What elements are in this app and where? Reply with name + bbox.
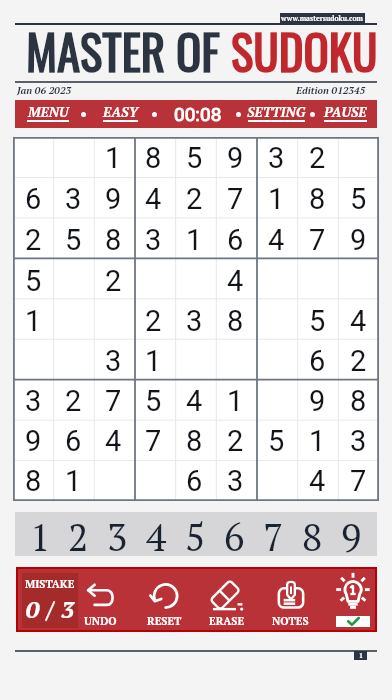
button[interactable]: 6 <box>174 461 215 501</box>
button[interactable]: 9 <box>93 178 133 219</box>
button[interactable]: NOTES <box>260 569 320 630</box>
button[interactable]: MENU <box>14 100 82 128</box>
button[interactable]: 1 <box>174 219 215 260</box>
button[interactable]: 3 <box>13 381 53 421</box>
button[interactable]: 3 <box>98 512 137 556</box>
button[interactable]: 6 <box>13 178 53 219</box>
button[interactable]: 5 <box>338 178 379 219</box>
button[interactable]: 9 <box>338 219 379 260</box>
button[interactable]: 2 <box>297 137 338 178</box>
button[interactable]: 7 <box>93 381 133 421</box>
button[interactable]: ERASE <box>197 569 257 630</box>
button[interactable] <box>93 461 133 501</box>
button[interactable]: 8 <box>215 301 256 341</box>
button[interactable]: 3 <box>133 219 174 260</box>
button[interactable]: 9 <box>332 512 371 556</box>
button[interactable]: 9 <box>13 421 53 461</box>
button[interactable]: 3 <box>53 178 93 219</box>
button[interactable]: 9 <box>297 381 338 421</box>
button[interactable] <box>256 381 297 421</box>
button[interactable]: 4 <box>133 178 174 219</box>
button[interactable]: 1 <box>215 381 256 421</box>
button[interactable] <box>256 260 297 301</box>
button[interactable] <box>174 260 215 301</box>
button[interactable]: 5 <box>256 421 297 461</box>
button[interactable]: 1 <box>133 341 174 381</box>
button[interactable] <box>13 341 53 381</box>
button[interactable] <box>53 301 93 341</box>
button[interactable]: 00:08 <box>164 100 232 128</box>
button[interactable] <box>297 260 338 301</box>
button[interactable]: 7 <box>338 461 379 501</box>
button[interactable]: 4 <box>137 512 176 556</box>
button[interactable] <box>93 301 133 341</box>
button[interactable]: RESET <box>134 569 194 630</box>
button[interactable]: Hint <box>323 569 383 630</box>
button[interactable] <box>215 341 256 381</box>
button[interactable]: 5 <box>174 137 215 178</box>
button[interactable] <box>338 260 379 301</box>
button[interactable] <box>256 341 297 381</box>
button[interactable]: 2 <box>59 512 98 556</box>
button[interactable]: 5 <box>133 381 174 421</box>
button[interactable]: 8 <box>297 178 338 219</box>
button[interactable]: 7 <box>215 178 256 219</box>
button[interactable]: 5 <box>297 301 338 341</box>
button[interactable]: SETTING <box>242 100 310 128</box>
button[interactable] <box>256 461 297 501</box>
button[interactable]: 8 <box>93 219 133 260</box>
button[interactable]: MISTAKE <box>22 573 78 628</box>
button[interactable]: 1 <box>13 301 53 341</box>
button[interactable] <box>338 137 379 178</box>
button[interactable]: 8 <box>293 512 332 556</box>
button[interactable] <box>256 301 297 341</box>
button[interactable]: 2 <box>93 260 133 301</box>
button[interactable]: 3 <box>338 421 379 461</box>
button[interactable]: 8 <box>13 461 53 501</box>
button[interactable]: 6 <box>53 421 93 461</box>
button[interactable]: PAUSE <box>311 100 379 128</box>
button[interactable]: 6 <box>215 512 254 556</box>
button[interactable]: 2 <box>215 421 256 461</box>
button[interactable]: 7 <box>297 219 338 260</box>
button[interactable]: 1 <box>297 421 338 461</box>
button[interactable] <box>53 341 93 381</box>
button[interactable] <box>133 461 174 501</box>
button[interactable]: 2 <box>133 301 174 341</box>
button[interactable]: 5 <box>53 219 93 260</box>
button[interactable]: 8 <box>133 137 174 178</box>
button[interactable] <box>133 260 174 301</box>
button[interactable]: 4 <box>256 219 297 260</box>
button[interactable]: 3 <box>174 301 215 341</box>
button[interactable]: 2 <box>174 178 215 219</box>
button[interactable]: 7 <box>254 512 293 556</box>
button[interactable] <box>174 341 215 381</box>
button[interactable]: 8 <box>174 421 215 461</box>
button[interactable]: 5 <box>13 260 53 301</box>
button[interactable]: UNDO <box>70 569 130 630</box>
button[interactable]: 9 <box>215 137 256 178</box>
button[interactable]: 2 <box>338 341 379 381</box>
button[interactable]: 5 <box>176 512 215 556</box>
button[interactable]: 4 <box>297 461 338 501</box>
button[interactable] <box>53 137 93 178</box>
button[interactable]: 4 <box>174 381 215 421</box>
button[interactable]: 1 <box>53 461 93 501</box>
button[interactable]: 6 <box>297 341 338 381</box>
button[interactable]: 4 <box>215 260 256 301</box>
button[interactable] <box>13 137 53 178</box>
button[interactable]: 7 <box>133 421 174 461</box>
button[interactable]: 2 <box>13 219 53 260</box>
button[interactable]: 8 <box>338 381 379 421</box>
button[interactable] <box>53 260 93 301</box>
button[interactable]: 3 <box>93 341 133 381</box>
button[interactable]: 6 <box>215 219 256 260</box>
button[interactable]: 3 <box>256 137 297 178</box>
button[interactable]: 1 <box>93 137 133 178</box>
button[interactable]: 4 <box>338 301 379 341</box>
button[interactable]: 3 <box>215 461 256 501</box>
button[interactable]: website <box>280 13 365 24</box>
button[interactable]: 1 <box>256 178 297 219</box>
button[interactable]: 4 <box>93 421 133 461</box>
button[interactable]: 1 <box>21 512 59 556</box>
